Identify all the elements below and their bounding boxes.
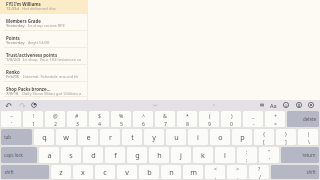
staticText: Points (6, 35, 20, 41)
staticText: z (59, 167, 63, 177)
staticText: + (274, 112, 277, 119)
staticText: tab (4, 134, 11, 140)
button[interactable]: More (209, 100, 218, 110)
button[interactable]: q (34, 129, 54, 145)
button[interactable]: u (166, 129, 186, 145)
button[interactable]: @ (45, 111, 65, 127)
button[interactable]: | (298, 129, 318, 145)
button[interactable]: n (161, 165, 181, 179)
button[interactable]: } (276, 129, 296, 145)
button[interactable]: r (100, 129, 120, 145)
button[interactable]: Paste (29, 100, 38, 110)
button[interactable]: Dictation (294, 100, 303, 110)
button[interactable]: e (78, 129, 98, 145)
button[interactable]: x (73, 165, 93, 179)
button[interactable]: k (193, 147, 213, 163)
button[interactable]: + (265, 111, 285, 127)
staticText: 7 (164, 120, 167, 127)
button[interactable]: t (122, 129, 142, 145)
button[interactable]: Redo (17, 100, 26, 110)
button[interactable]: Shop Packs bronze... (0, 82, 87, 97)
button[interactable]: : (237, 147, 257, 163)
staticText: = (274, 120, 277, 127)
staticText: o (218, 132, 223, 142)
button[interactable]: i (188, 129, 208, 145)
button[interactable]: m (183, 165, 203, 179)
button[interactable]: p (232, 129, 252, 145)
button[interactable]: o (210, 129, 230, 145)
button[interactable]: ( (199, 111, 219, 127)
button[interactable]: Dismiss keyboard (306, 100, 315, 110)
button[interactable]: Members Grade (0, 14, 87, 31)
button[interactable]: Points (0, 31, 87, 48)
button[interactable]: < (205, 165, 225, 179)
button[interactable]: delete (287, 111, 319, 127)
staticText: Yesterday (6, 40, 25, 46)
staticText: | (307, 130, 310, 137)
staticText: ! (33, 112, 35, 119)
button[interactable]: ? (249, 165, 269, 179)
button[interactable]: j (171, 147, 191, 163)
staticText: 0 (230, 120, 233, 127)
button[interactable]: s (61, 147, 81, 163)
button[interactable]: $ (89, 111, 109, 127)
button[interactable]: ) (221, 111, 241, 127)
staticText: In-shop course RFE (28, 23, 65, 29)
staticText: s (69, 150, 73, 160)
button[interactable]: " (259, 147, 279, 163)
staticText: & (163, 112, 167, 119)
button[interactable]: > (227, 165, 247, 179)
button[interactable]: l (215, 147, 235, 163)
button[interactable]: c (95, 165, 115, 179)
staticText: k (201, 150, 205, 160)
button[interactable]: shift (271, 165, 319, 179)
staticText: Shop Packs bronze... (6, 86, 51, 92)
staticText: _ (252, 112, 255, 119)
button[interactable]: _ (243, 111, 263, 127)
button[interactable]: z (51, 165, 71, 179)
button[interactable]: # (67, 111, 87, 127)
button[interactable]: ^ (133, 111, 153, 127)
button[interactable]: v (117, 165, 137, 179)
button[interactable]: w (56, 129, 76, 145)
button[interactable]: Renko (0, 65, 87, 82)
staticText: - (253, 120, 255, 127)
button[interactable]: Undo (4, 100, 13, 110)
button[interactable]: caps lock (1, 147, 37, 163)
staticText: Anyti 14:00 (28, 40, 50, 46)
staticText: ? (258, 165, 261, 172)
button[interactable]: FYI I'm Williams (0, 0, 87, 14)
button[interactable]: ! (23, 111, 43, 127)
button[interactable]: f (105, 147, 125, 163)
button[interactable]: % (111, 111, 131, 127)
staticText: d (91, 150, 96, 160)
staticText: t (131, 132, 134, 142)
staticText: i (197, 132, 199, 142)
staticText: v (125, 167, 129, 177)
staticText: n (169, 167, 174, 177)
button[interactable]: d (83, 147, 103, 163)
button[interactable]: & (155, 111, 175, 127)
button[interactable]: * (177, 111, 197, 127)
staticText: > (236, 165, 239, 172)
button[interactable]: h (149, 147, 169, 163)
button[interactable]: Trust/activeness points (0, 48, 87, 65)
staticText: % (119, 112, 124, 119)
button[interactable]: shift (1, 165, 49, 179)
button[interactable]: y (144, 129, 164, 145)
button[interactable]: g (127, 147, 147, 163)
button[interactable]: Hide keyboard (150, 100, 159, 110)
button[interactable]: a (39, 147, 59, 163)
staticText: h (157, 150, 162, 160)
button[interactable]: tab (1, 129, 32, 145)
staticText: 4 (98, 120, 101, 127)
button[interactable]: b (139, 165, 159, 179)
button[interactable]: Keyboard layout (257, 100, 266, 110)
button[interactable]: Aa (267, 100, 279, 110)
button[interactable]: ~ (1, 111, 21, 127)
button[interactable]: { (254, 129, 274, 145)
button[interactable]: Emoji (281, 100, 290, 110)
staticText: . (237, 173, 239, 179)
button[interactable]: return (281, 147, 319, 163)
staticText: Hot delivered doc (22, 6, 56, 12)
